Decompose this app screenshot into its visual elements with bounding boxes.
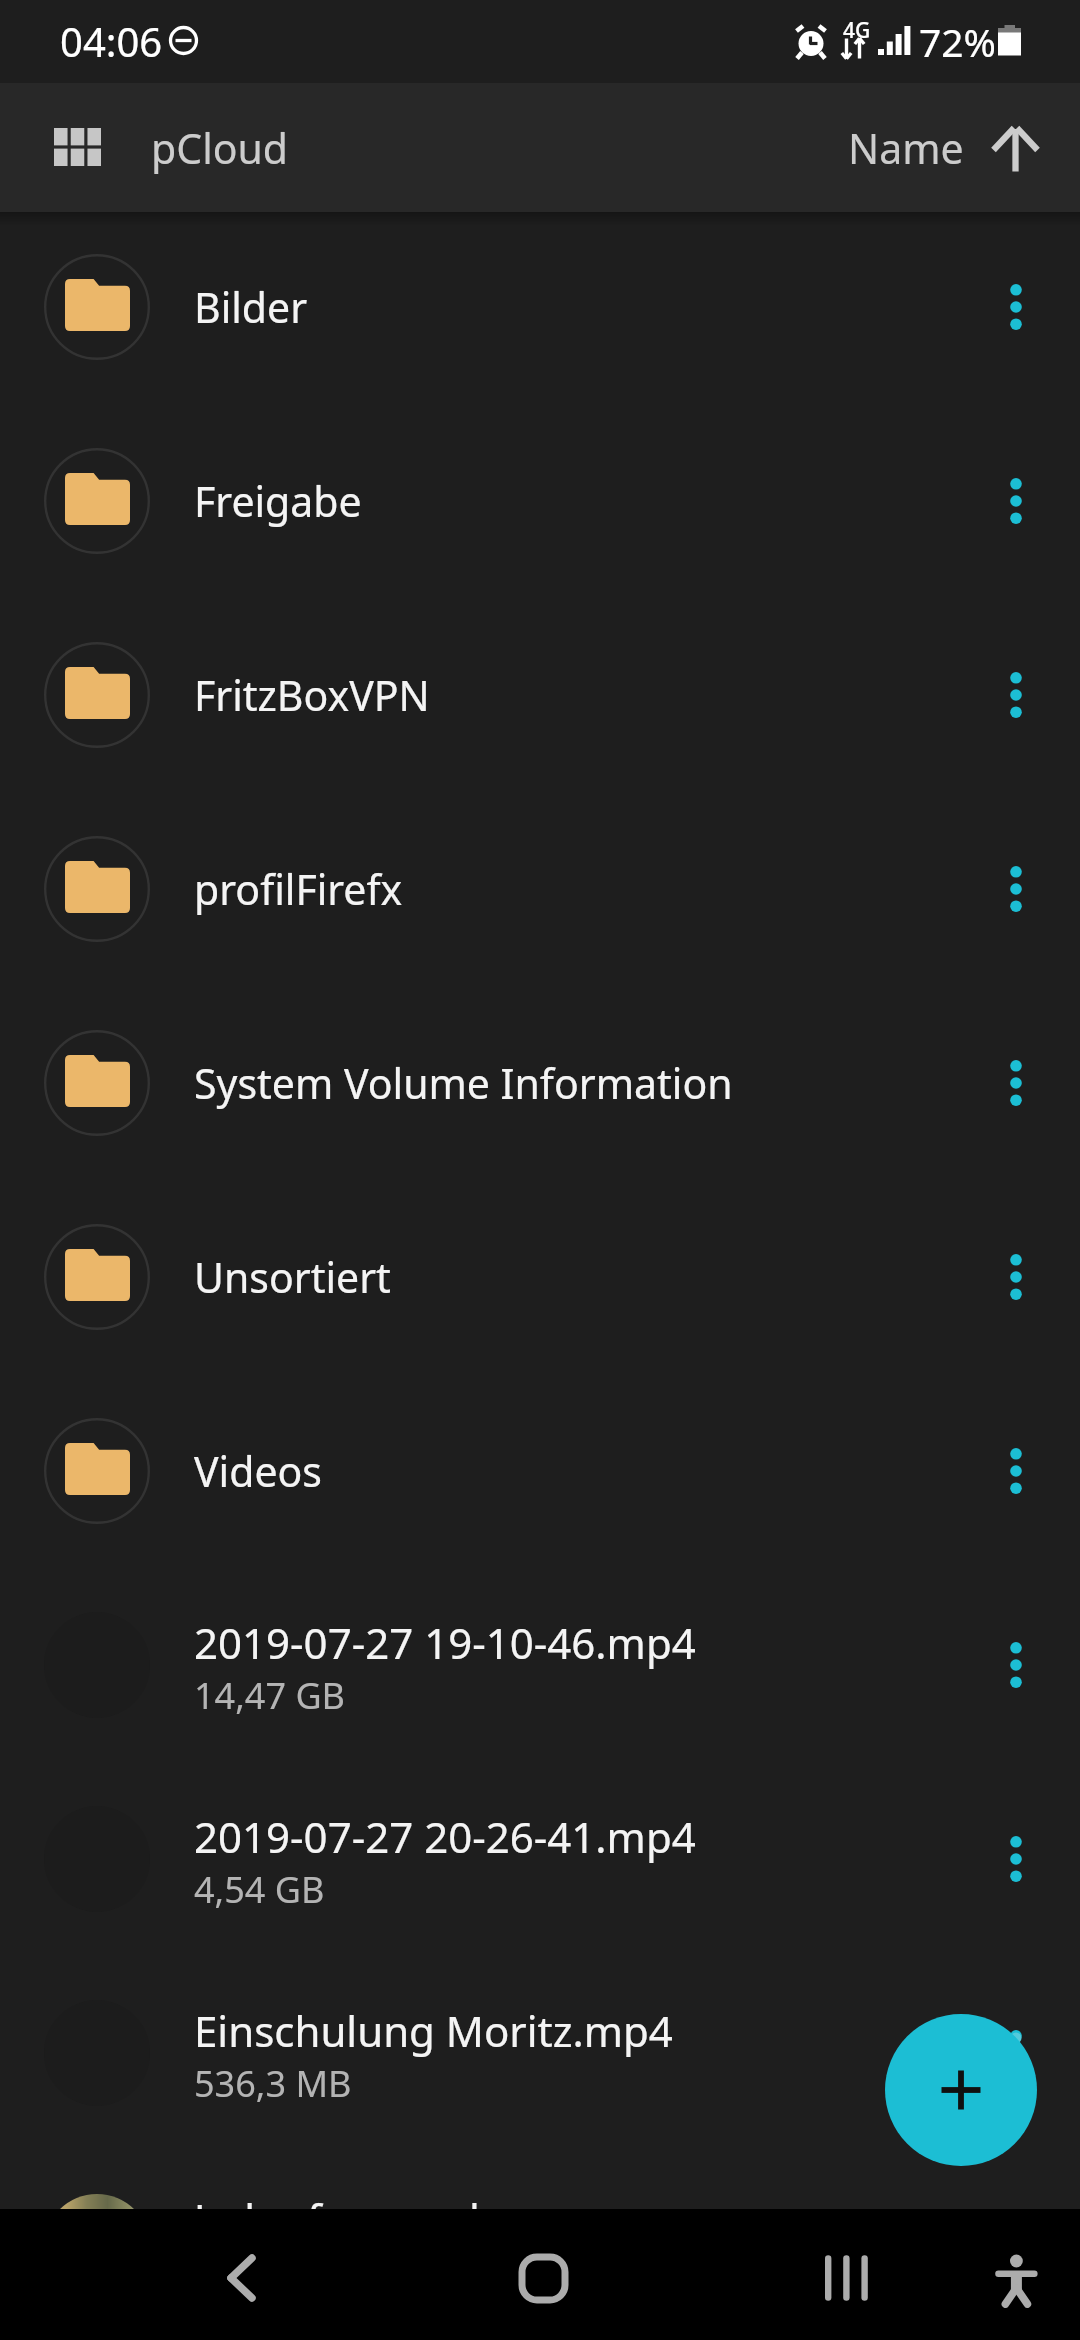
button[interactable]: More options: [949, 1762, 1080, 1956]
button[interactable]: 2019-07-27 19-10-46.mp4: [0, 1568, 1080, 1762]
staticText: 1,38 MB: [194, 2247, 331, 2296]
staticText: profilFirefx: [194, 861, 949, 917]
button[interactable]: Jeder fuer euch.png: [0, 2150, 1080, 2340]
button[interactable]: Accessibility: [964, 2229, 1068, 2333]
staticText: pCloud: [151, 120, 289, 176]
button[interactable]: Recents: [794, 2226, 898, 2330]
button[interactable]: Videos: [0, 1374, 1080, 1568]
staticText: 2019-07-27 19-10-46.mp4: [194, 1614, 696, 1671]
button[interactable]: Add: [885, 2014, 1037, 2166]
button[interactable]: Home: [491, 2226, 595, 2330]
staticText: 14,47 GB: [194, 1671, 345, 1720]
staticText: Einschulung Moritz.mp4: [194, 2002, 673, 2059]
staticText: System Volume Information: [194, 1055, 949, 1111]
button[interactable]: More options: [949, 792, 1080, 986]
staticText: 04:06: [60, 14, 163, 68]
button[interactable]: More options: [949, 598, 1080, 792]
button[interactable]: Unsortiert: [0, 1180, 1080, 1374]
staticText: FritzBoxVPN: [194, 667, 949, 723]
button[interactable]: More options: [949, 1568, 1080, 1762]
button[interactable]: FritzBoxVPN: [0, 598, 1080, 792]
staticText: Freigabe: [194, 473, 949, 529]
staticText: 72%: [919, 15, 997, 68]
button[interactable]: System Volume Information: [0, 986, 1080, 1180]
staticText: 2019-07-27 20-26-41.mp4: [194, 1808, 696, 1865]
button[interactable]: Bilder: [0, 210, 1080, 404]
button[interactable]: More options: [949, 1180, 1080, 1374]
button[interactable]: More options: [949, 986, 1080, 1180]
button[interactable]: More options: [949, 2150, 1080, 2340]
button[interactable]: More options: [949, 1374, 1080, 1568]
staticText: Jeder fuer euch.png: [194, 2190, 584, 2247]
staticText: Videos: [194, 1443, 949, 1499]
staticText: Bilder: [194, 279, 949, 335]
staticText: Unsortiert: [194, 1249, 949, 1305]
button[interactable]: More options: [949, 404, 1080, 598]
button[interactable]: Grid view: [34, 119, 120, 175]
button[interactable]: More options: [949, 1956, 1080, 2150]
staticText: Name: [848, 120, 964, 176]
button[interactable]: More options: [949, 210, 1080, 404]
button[interactable]: profilFirefx: [0, 792, 1080, 986]
button[interactable]: Back: [189, 2226, 293, 2330]
staticText: 536,3 MB: [194, 2059, 352, 2108]
staticText: 4,54 GB: [194, 1865, 325, 1914]
button[interactable]: Freigabe: [0, 404, 1080, 598]
staticText: 4G: [843, 16, 871, 45]
button[interactable]: Einschulung Moritz.mp4: [0, 1956, 1080, 2150]
button[interactable]: 2019-07-27 20-26-41.mp4: [0, 1762, 1080, 1956]
button[interactable]: Sort by Name: [830, 103, 1060, 193]
